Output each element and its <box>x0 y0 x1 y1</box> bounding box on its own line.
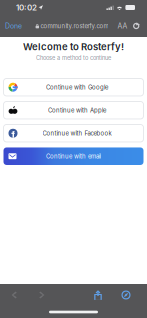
button[interactable]: Continue with email <box>3 147 143 165</box>
staticText: 10:02 <box>16 3 37 12</box>
button[interactable]: Share <box>84 285 112 305</box>
staticText: Continue with Apple <box>48 107 106 114</box>
button[interactable]: Text size <box>115 18 129 34</box>
staticText: AA <box>117 22 127 30</box>
button[interactable]: Open in Safari <box>112 285 140 305</box>
staticText: Welcome to Rosterfy! <box>23 41 124 53</box>
staticText: Continue with Facebook <box>42 130 111 137</box>
button[interactable]: Forward <box>28 285 56 305</box>
staticText: Choose a method to continue <box>36 55 111 61</box>
button[interactable]: Continue with Apple <box>3 101 143 119</box>
button[interactable]: Continue with Facebook <box>3 124 143 142</box>
staticText: Continue with Google <box>46 84 108 91</box>
button[interactable]: Done <box>1 18 26 34</box>
button[interactable]: Reload <box>129 18 143 34</box>
button[interactable]: Back <box>0 285 28 305</box>
button[interactable]: Continue with Google <box>3 78 143 96</box>
staticText: Done <box>5 22 22 30</box>
staticText: community.rosterfy.com <box>40 22 108 30</box>
staticText: Continue with email <box>46 153 101 160</box>
